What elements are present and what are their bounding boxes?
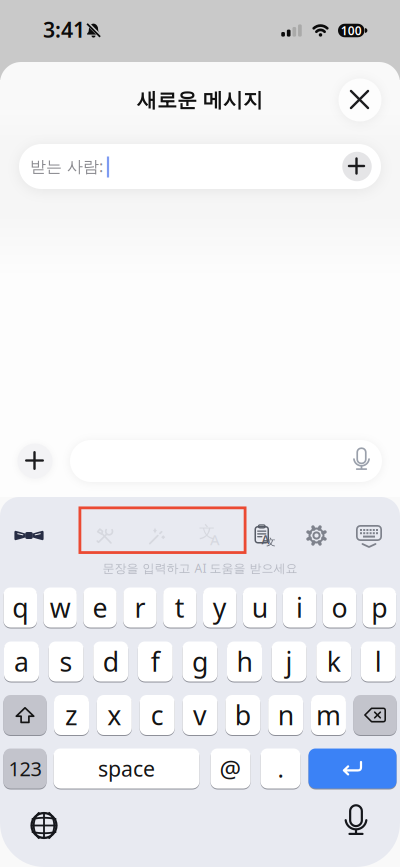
staticText: 새로운 메시지: [137, 88, 263, 112]
staticText: o: [331, 590, 347, 625]
button[interactable]: a: [4, 641, 39, 682]
staticText: w: [50, 590, 71, 625]
button[interactable]: o: [323, 587, 356, 628]
button[interactable]: Settings: [301, 520, 331, 550]
staticText: b: [235, 697, 251, 733]
button[interactable]: d: [93, 641, 128, 682]
staticText: m: [316, 697, 341, 733]
staticText: h: [236, 644, 252, 679]
button[interactable]: Add recipient: [342, 152, 372, 181]
button[interactable]: h: [227, 641, 262, 682]
button[interactable]: p: [363, 587, 396, 628]
button[interactable]: y: [203, 587, 236, 628]
button[interactable]: n: [268, 694, 303, 735]
button[interactable]: i: [283, 587, 316, 628]
button[interactable]: @: [210, 748, 250, 789]
button[interactable]: Dictate: [350, 450, 374, 474]
button[interactable]: t: [163, 587, 197, 628]
staticText: .: [277, 753, 283, 784]
button[interactable]: Translate: [195, 520, 225, 550]
button[interactable]: Add attachment: [17, 443, 52, 478]
staticText: c: [151, 697, 164, 733]
staticText: space: [98, 754, 155, 783]
button[interactable]: w: [43, 587, 77, 628]
button[interactable]: Tools: [89, 520, 119, 550]
staticText: y: [213, 590, 227, 625]
staticText: p: [371, 590, 387, 625]
staticText: k: [327, 644, 341, 679]
staticText: l: [375, 644, 382, 679]
staticText: z: [65, 697, 78, 733]
button[interactable]: g: [182, 641, 217, 682]
staticText: d: [103, 644, 119, 679]
button[interactable]: Delete: [353, 694, 396, 735]
staticText: j: [286, 644, 293, 679]
staticText: @: [219, 753, 241, 784]
button[interactable]: AI writing: [142, 520, 172, 550]
button[interactable]: m: [311, 694, 346, 735]
button[interactable]: Next keyboard: [30, 811, 58, 839]
staticText: 받는 사람:: [30, 155, 103, 177]
button[interactable]: u: [243, 587, 276, 628]
staticText: 文: [266, 536, 275, 548]
button[interactable]: v: [182, 694, 217, 735]
staticText: x: [107, 697, 121, 733]
staticText: 文: [199, 522, 215, 542]
button[interactable]: q: [3, 587, 37, 628]
button[interactable]: .: [260, 748, 300, 789]
button[interactable]: space: [53, 748, 199, 789]
button[interactable]: Dictation: [341, 807, 371, 841]
staticText: t: [175, 590, 185, 625]
button[interactable]: r: [123, 587, 157, 628]
staticText: e: [92, 590, 107, 625]
button[interactable]: l: [361, 641, 396, 682]
staticText: 3:41: [43, 15, 85, 44]
staticText: A: [261, 532, 269, 548]
button[interactable]: Dismiss keyboard: [354, 521, 384, 551]
staticText: v: [193, 697, 207, 733]
staticText: q: [12, 590, 28, 625]
staticText: 문장을 입력하고 AI 도움을 받으세요: [102, 560, 297, 576]
button[interactable]: j: [272, 641, 307, 682]
staticText: f: [151, 644, 160, 679]
staticText: A: [210, 530, 220, 549]
button[interactable]: Shift: [3, 694, 46, 735]
button[interactable]: Return: [308, 748, 396, 789]
staticText: a: [14, 644, 29, 679]
button[interactable]: Message: [70, 440, 382, 482]
staticText: i: [296, 590, 303, 625]
staticText: r: [134, 590, 145, 625]
button[interactable]: e: [83, 587, 117, 628]
staticText: s: [60, 644, 73, 679]
button[interactable]: Close: [338, 78, 381, 121]
staticText: g: [192, 644, 208, 679]
staticText: 100: [341, 23, 362, 39]
button[interactable]: To: [19, 144, 381, 189]
button[interactable]: f: [138, 641, 173, 682]
button[interactable]: c: [140, 694, 175, 735]
staticText: 123: [8, 755, 41, 782]
button[interactable]: b: [225, 694, 260, 735]
button[interactable]: x: [97, 694, 132, 735]
staticText: n: [278, 697, 294, 733]
button[interactable]: z: [54, 694, 89, 735]
staticText: u: [252, 590, 268, 625]
button[interactable]: k: [316, 641, 351, 682]
button[interactable]: Assistant: [12, 520, 46, 550]
button[interactable]: s: [49, 641, 84, 682]
button[interactable]: 123: [3, 748, 46, 789]
button[interactable]: Translate clipboard: [248, 519, 278, 549]
